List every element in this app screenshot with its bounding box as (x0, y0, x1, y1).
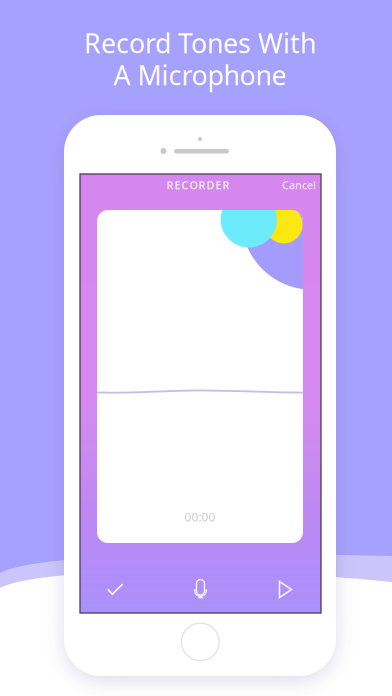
button[interactable]: Play (270, 574, 300, 604)
staticText: Cancel (282, 178, 316, 192)
button[interactable]: Save recording (100, 574, 130, 604)
button[interactable]: Record (185, 573, 215, 603)
staticText: A Microphone (113, 57, 286, 93)
button[interactable]: Cancel (272, 177, 321, 193)
staticText: RECORDER (166, 178, 229, 192)
staticText: 00:00 (184, 509, 215, 525)
staticText: Record Tones With (84, 25, 316, 61)
